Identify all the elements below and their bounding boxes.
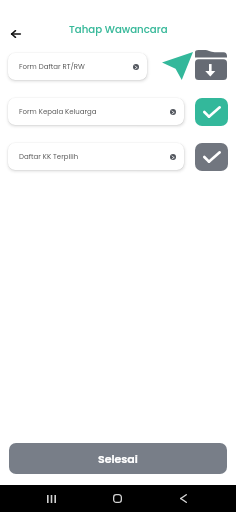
button[interactable]: Download (194, 50, 228, 80)
button[interactable]: Recents (37, 485, 66, 512)
button[interactable]: Back (169, 485, 198, 512)
button[interactable]: Daftar KK Terpilih (8, 143, 184, 170)
staticText: Form Daftar RT/RW (19, 62, 133, 72)
button[interactable]: Send (161, 51, 193, 81)
button[interactable]: Completed (195, 98, 228, 126)
button[interactable]: Completed (195, 143, 228, 171)
button[interactable]: Form Daftar RT/RW (8, 53, 147, 80)
button[interactable]: Selesai (9, 443, 227, 474)
staticText: Selesai (98, 451, 138, 466)
button[interactable]: Home (103, 485, 132, 512)
staticText: Tahap Wawancara (69, 22, 168, 36)
button[interactable]: Back (4, 22, 28, 46)
staticText: Daftar KK Terpilih (19, 152, 170, 162)
staticText: Form Kepala Keluarga (19, 107, 170, 117)
button[interactable]: Form Kepala Keluarga (8, 98, 184, 125)
